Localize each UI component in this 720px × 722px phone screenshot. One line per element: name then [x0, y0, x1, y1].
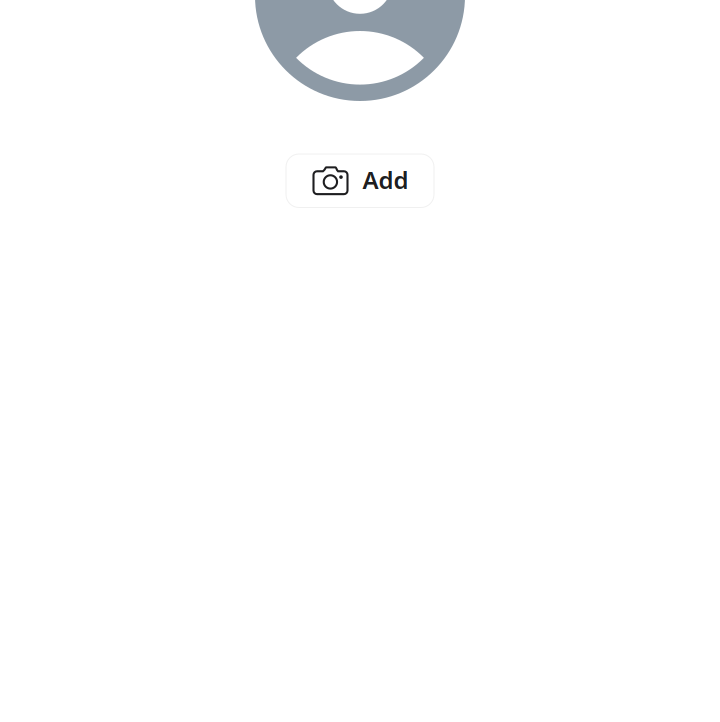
staticText: Add — [362, 164, 408, 196]
button[interactable]: Add — [286, 154, 434, 207]
